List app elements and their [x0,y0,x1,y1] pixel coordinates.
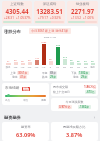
staticText: 两融净买额占比 [63,125,86,129]
staticText: 涨停 [89,66,96,69]
staticText: 9% [82,66,89,69]
staticText: 冰点 [5,99,10,102]
staticText: +13.52 [71,16,81,20]
staticText: +79.17 [38,16,48,20]
staticText: 3% [61,66,68,69]
staticText: 13283.51 [35,7,64,15]
staticText: -5% [26,66,33,69]
button[interactable]: 上证指数 [2,1,32,24]
staticText: -3% [33,66,40,69]
staticText: 沸腾 [41,99,46,102]
button[interactable]: 两融净买额占比 [51,122,98,141]
button[interactable]: 创业板指 [67,1,98,24]
staticText: 88家 [50,71,56,75]
staticText: 0 [47,66,54,69]
staticText: 29家 [50,75,56,79]
staticText: 63.09% [16,131,36,138]
staticText: 52 [28,59,31,62]
staticText: 2271.97 [68,7,97,15]
staticText: 56 [77,60,80,63]
staticText: -1382家 [79,105,90,109]
staticText: 1% [54,66,61,69]
staticText: +1.0537% [16,16,31,20]
staticText: 下跌 [71,71,77,75]
staticText: -9% [12,66,19,69]
staticText: 跌停 [42,75,48,79]
staticText: 92 [70,59,73,62]
staticText: 市场情绪 [5,86,20,91]
button[interactable]: 今日涨跌家数 [51,98,98,111]
staticText: 3061家 [18,71,28,75]
staticText: 今日涨跌家数 [53,100,96,104]
staticText: 上证指数 [3,2,31,6]
staticText: 两市成交额 [53,85,68,89]
staticText: +1.00% [83,16,94,20]
staticText: 63 [14,59,17,62]
staticText: -673亿 [86,90,95,94]
button[interactable]: 融资率 [2,122,49,141]
staticText: 涨停 [12,75,18,79]
staticText: 平盘 [42,71,48,75]
staticText: 34 [84,60,87,63]
staticText: 7% [75,66,82,69]
staticText: 涨停 [73,75,79,79]
staticText: 融资率 [21,125,31,129]
staticText: 5% [68,66,75,69]
staticText: 3.97万亿 [59,105,71,109]
staticText: 2025-11-07 [4,35,96,38]
staticText: 中性 [23,99,28,102]
staticText: 4305.44 [3,7,31,15]
staticText: 深证成指 [35,2,64,6]
staticText: 1082 [41,41,47,44]
staticText: 3.87% [66,131,83,138]
button[interactable]: 市场情绪 [2,83,49,105]
staticText: 1382家 [79,71,89,75]
staticText: 上涨 [10,71,16,75]
button[interactable]: 融资融券 [2,113,98,122]
staticText: 1.86万亿 [84,85,96,89]
staticText: 38 [21,60,24,63]
staticText: 29家 [81,75,87,79]
staticText: 88 [49,58,52,61]
button[interactable]: 今日3061家上涨 涨停41家 [29,28,71,34]
staticText: +28.31 [4,16,14,20]
staticText: +0.92% [50,16,61,20]
staticText: 创业板指 [68,2,97,6]
button[interactable]: 深证成指 [34,1,65,24]
staticText: 融资融券 [4,115,21,120]
staticText: 今日3061家上涨 涨停41家 [31,29,69,33]
staticText: 147 [35,57,39,60]
staticText: 946 [56,44,60,47]
staticText: 较上个交易日 [53,90,70,94]
staticText: 涨跌分布 [4,29,21,34]
staticText: 29 [91,60,94,63]
staticText: -1% [40,66,47,69]
staticText: 较热 [23,87,29,91]
staticText: -7% [19,66,26,69]
staticText: 214 [63,56,67,59]
staticText: 41 [7,60,10,63]
staticText: 41家 [20,75,26,79]
other: 更多 [93,116,96,119]
button[interactable]: 两市成交额 [51,83,98,96]
staticText: 跌停 [4,66,12,69]
